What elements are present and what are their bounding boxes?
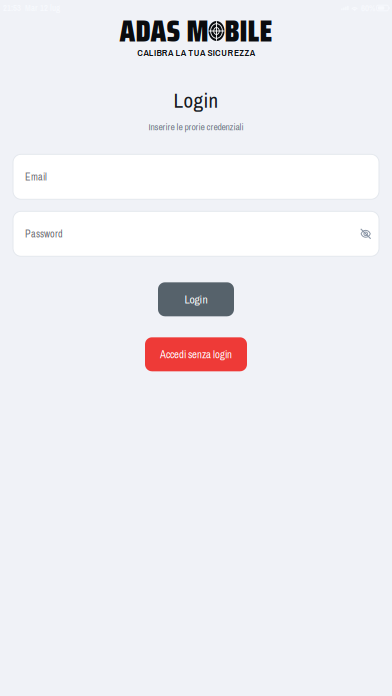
staticText: ADAS M: [119, 7, 208, 55]
staticText: Email: [25, 170, 47, 184]
staticText: CALIBRA LA TUA SICUREZZA: [137, 46, 255, 59]
staticText: Password: [25, 227, 63, 241]
staticText: Inserire le prorie credenziali: [148, 120, 243, 133]
staticText: Login: [173, 86, 218, 114]
button[interactable]: Login: [158, 282, 234, 316]
staticText: BILE: [224, 7, 272, 55]
staticText: Login: [184, 291, 207, 307]
button[interactable]: Accedi senza login: [145, 337, 247, 371]
button[interactable]: Mostra password: [354, 222, 371, 245]
staticText: Accedi senza login: [160, 347, 232, 361]
